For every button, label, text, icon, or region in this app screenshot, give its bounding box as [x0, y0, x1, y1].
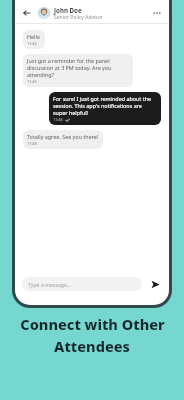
button[interactable]: Totally agree. See you there!	[23, 130, 103, 149]
staticText: Totally agree. See you there!	[27, 133, 99, 140]
staticText: Attendees	[54, 336, 130, 356]
staticText: Hello	[27, 33, 41, 40]
staticText: John Doe	[54, 6, 82, 14]
button[interactable]: Back	[20, 6, 34, 20]
staticText: For sure! I just got reminded about the …	[53, 95, 157, 116]
staticText: 11:48	[27, 141, 37, 146]
button[interactable]: John Doe avatar	[38, 7, 50, 19]
staticText: Senior Policy Advisor	[54, 14, 103, 21]
button[interactable]: Hello	[23, 30, 45, 49]
button[interactable]: For sure! I just got reminded about the …	[49, 92, 161, 125]
staticText: Connect with Other	[20, 314, 165, 334]
button[interactable]: More options	[150, 6, 164, 20]
staticText: 11:46	[53, 117, 63, 122]
button[interactable]: Type a message...	[22, 277, 142, 291]
staticText: Type a message...	[28, 281, 72, 288]
staticText: 11:45	[27, 79, 37, 84]
button[interactable]: Just got a reminder for the panel discus…	[23, 54, 133, 87]
button[interactable]: Send	[148, 277, 162, 291]
staticText: 11:44	[27, 41, 37, 46]
staticText: Just got a reminder for the panel discus…	[27, 57, 129, 78]
